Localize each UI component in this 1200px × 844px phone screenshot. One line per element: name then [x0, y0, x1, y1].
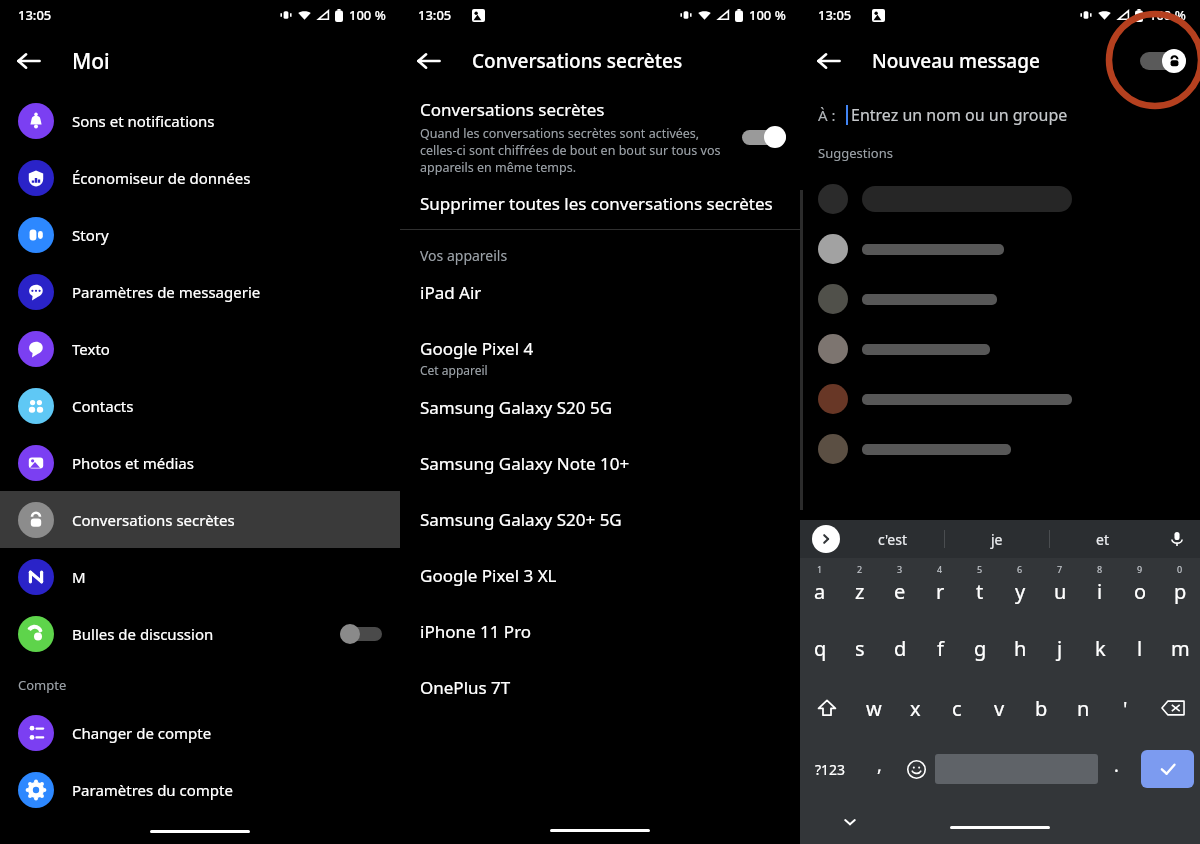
staticText: Nouveau message	[872, 48, 1040, 74]
staticText: c'est	[878, 530, 907, 549]
staticText: t	[976, 578, 984, 605]
staticText: ?123	[815, 760, 846, 779]
staticText: Story	[72, 225, 109, 245]
button[interactable]: je	[945, 520, 1049, 558]
button[interactable]: et	[1050, 520, 1154, 558]
button[interactable]: 4	[920, 558, 960, 618]
button[interactable]: Back	[406, 38, 452, 84]
button[interactable]: n	[1062, 678, 1104, 738]
button[interactable]: c	[936, 678, 978, 738]
button[interactable]: Google Pixel 4	[400, 337, 800, 378]
staticText: ,	[877, 753, 882, 778]
staticText: c	[952, 695, 962, 722]
button[interactable]	[800, 224, 1200, 274]
button[interactable]	[800, 374, 1200, 424]
staticText: z	[855, 578, 865, 605]
button[interactable]: Back	[6, 38, 52, 84]
button[interactable]: 0	[1160, 558, 1200, 618]
button[interactable]	[800, 324, 1200, 374]
staticText: .	[1114, 753, 1119, 778]
staticText: i	[1097, 578, 1103, 605]
button[interactable]: q	[800, 618, 840, 678]
button[interactable]: 2	[840, 558, 880, 618]
button[interactable]: h	[1000, 618, 1040, 678]
button[interactable]: Story	[0, 206, 400, 263]
button[interactable]: Samsung Galaxy Note 10+	[400, 452, 800, 475]
button[interactable]: Google Pixel 3 XL	[400, 564, 800, 587]
button[interactable]: m	[1160, 618, 1200, 678]
button[interactable]: Conversations secrètes	[400, 92, 800, 176]
staticText: Contacts	[72, 396, 134, 416]
staticText: Entrez un nom ou un groupe	[851, 104, 1068, 126]
staticText: h	[1014, 635, 1027, 662]
button[interactable]: 9	[1120, 558, 1160, 618]
button[interactable]: '	[1104, 678, 1146, 738]
button[interactable]: Send	[1141, 750, 1194, 788]
button[interactable]: Sons et notifications	[0, 92, 400, 149]
button[interactable]: Économiseur de données	[0, 149, 400, 206]
button[interactable]: b	[1020, 678, 1062, 738]
button[interactable]: Conversations secrètes	[0, 491, 400, 548]
button[interactable]: Supprimer toutes les conversations secrè…	[400, 192, 800, 215]
staticText: Paramètres du compte	[72, 780, 233, 800]
button[interactable]: Texto	[0, 320, 400, 377]
staticText: Samsung Galaxy S20+ 5G	[420, 508, 622, 531]
button[interactable]: f	[920, 618, 960, 678]
button[interactable]: ,	[861, 738, 898, 800]
button[interactable]: Voice input	[1154, 520, 1200, 558]
button[interactable]	[800, 274, 1200, 324]
button[interactable]: 6	[1000, 558, 1040, 618]
button[interactable]: k	[1080, 618, 1120, 678]
button[interactable]: 3	[880, 558, 920, 618]
button[interactable]: d	[880, 618, 920, 678]
button[interactable]: Back	[806, 38, 852, 84]
button[interactable]: Samsung Galaxy S20 5G	[400, 396, 800, 419]
staticText: Économiseur de données	[72, 168, 251, 188]
button[interactable]: Backspace	[1146, 678, 1200, 738]
button[interactable]	[800, 174, 1200, 224]
button[interactable]: iPhone 11 Pro	[400, 620, 800, 643]
staticText: et	[1096, 530, 1109, 549]
button[interactable]: Emoji	[898, 738, 935, 800]
staticText: f	[937, 635, 944, 662]
staticText: 100 %	[1149, 6, 1186, 24]
button[interactable]: 7	[1040, 558, 1080, 618]
button[interactable]: .	[1098, 738, 1135, 800]
button[interactable]: 5	[960, 558, 1000, 618]
button[interactable]: iPad Air	[400, 281, 800, 304]
staticText: Changer de compte	[72, 723, 212, 743]
button[interactable]: c'est	[840, 520, 944, 558]
button[interactable]: j	[1040, 618, 1080, 678]
staticText: a	[814, 578, 826, 605]
button[interactable]: l	[1120, 618, 1160, 678]
button[interactable]: s	[840, 618, 880, 678]
button[interactable]: w	[853, 678, 894, 738]
button[interactable]: Shift	[800, 678, 853, 738]
staticText: Photos et médias	[72, 453, 194, 473]
button[interactable]: Paramètres du compte	[0, 761, 400, 818]
button[interactable]	[800, 424, 1200, 474]
staticText: 6	[1017, 563, 1023, 575]
button[interactable]: Paramètres de messagerie	[0, 263, 400, 320]
button[interactable]: Secret conversation toggle	[1140, 48, 1186, 74]
button[interactable]: Contacts	[0, 377, 400, 434]
button[interactable]: 1	[800, 558, 840, 618]
staticText: 4	[937, 563, 943, 575]
button[interactable]: OnePlus 7T	[400, 676, 800, 699]
staticText: q	[814, 635, 827, 662]
button[interactable]: Photos et médias	[0, 434, 400, 491]
button[interactable]: x	[894, 678, 936, 738]
button[interactable]: M	[0, 548, 400, 605]
staticText: Conversations secrètes	[72, 510, 235, 530]
button[interactable]: Expand	[812, 525, 840, 553]
button[interactable]: Samsung Galaxy S20+ 5G	[400, 508, 800, 531]
button[interactable]: g	[960, 618, 1000, 678]
button[interactable]: v	[978, 678, 1020, 738]
button[interactable]: 8	[1080, 558, 1120, 618]
button[interactable]: Changer de compte	[0, 704, 400, 761]
button[interactable]: Bulles de discussion	[0, 605, 400, 662]
button[interactable]: ?123	[800, 738, 861, 800]
staticText: iPhone 11 Pro	[420, 620, 532, 643]
staticText: k	[1095, 635, 1106, 662]
